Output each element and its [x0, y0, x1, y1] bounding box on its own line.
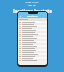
button[interactable]: [18, 47, 47, 49]
button[interactable]: [18, 41, 47, 43]
button[interactable]: [18, 43, 47, 45]
button[interactable]: [18, 25, 47, 27]
button[interactable]: [18, 33, 47, 35]
button[interactable]: [18, 18, 47, 21]
button[interactable]: [18, 35, 47, 37]
staticText: locations by state: [13, 8, 52, 14]
button[interactable]: [18, 59, 47, 61]
button[interactable]: Back: [19, 15, 22, 18]
button[interactable]: [18, 23, 47, 25]
staticText: locations: [27, 15, 38, 18]
button[interactable]: [18, 51, 47, 53]
button[interactable]: [18, 57, 47, 59]
button[interactable]: [18, 31, 47, 33]
staticText: LIST OF: [28, 4, 36, 7]
button[interactable]: [18, 53, 47, 55]
button[interactable]: [18, 29, 47, 31]
button[interactable]: [18, 55, 47, 57]
staticText: WHERE TO BUY: [25, 1, 39, 3]
button[interactable]: [18, 37, 47, 39]
button[interactable]: [18, 39, 47, 41]
button[interactable]: [18, 45, 47, 47]
button[interactable]: [18, 21, 47, 23]
button[interactable]: [18, 27, 47, 29]
button[interactable]: [18, 49, 47, 51]
